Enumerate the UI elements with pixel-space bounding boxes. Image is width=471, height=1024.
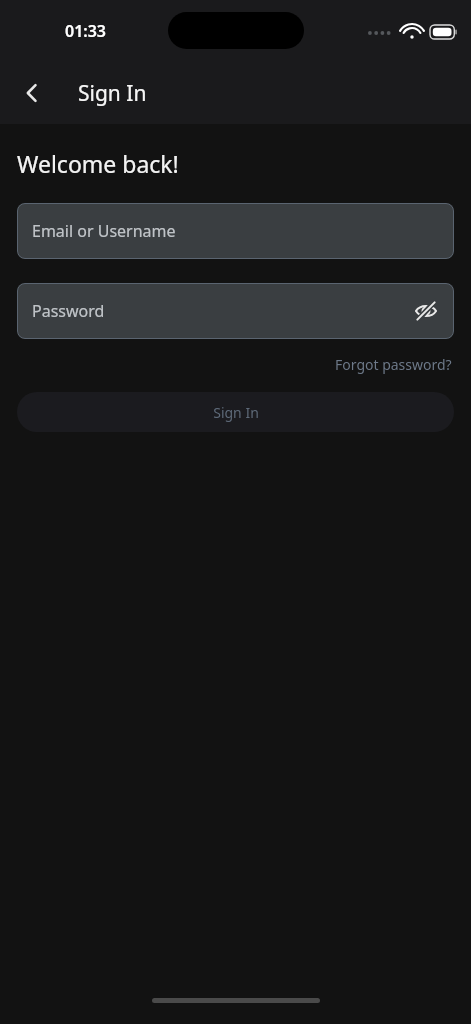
button[interactable]: Sign In <box>17 392 454 432</box>
staticText: Password <box>32 300 105 322</box>
button[interactable]: Email or Username <box>17 203 454 259</box>
staticText: Email or Username <box>32 220 176 242</box>
staticText: Forgot password? <box>335 355 452 374</box>
staticText: Sign In <box>213 403 259 422</box>
staticText: 01:33 <box>65 20 107 42</box>
button[interactable]: Show password <box>406 291 446 331</box>
button[interactable]: Forgot password? <box>333 353 454 376</box>
button[interactable]: Back <box>8 69 56 117</box>
button[interactable]: Password <box>17 283 454 339</box>
staticText: Welcome back! <box>17 148 179 179</box>
staticText: Sign In <box>78 79 147 108</box>
